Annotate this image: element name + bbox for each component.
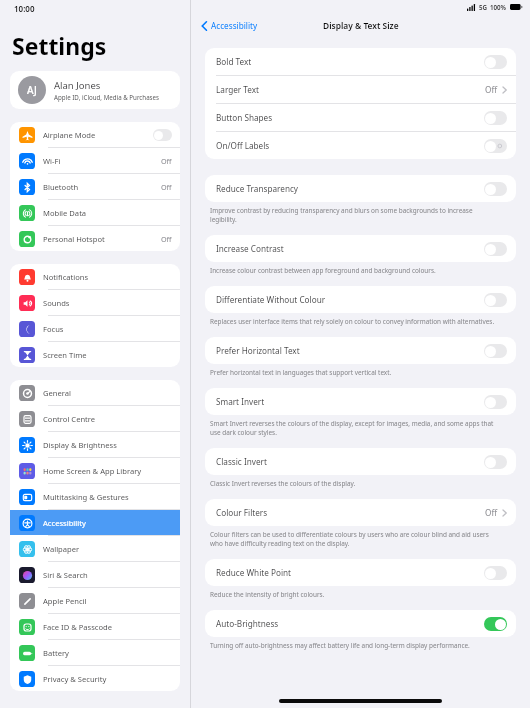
button[interactable]: Smart Invert (205, 388, 516, 415)
staticText: Multitasking & Gestures (43, 492, 129, 502)
button[interactable]: AJ (10, 71, 180, 109)
button[interactable]: Personal Hotspot (10, 226, 180, 251)
staticText: Siri & Search (43, 570, 88, 580)
staticText: Control Centre (43, 414, 96, 424)
staticText: Battery (43, 648, 69, 658)
staticText: Colour Filters (216, 507, 268, 518)
staticText: Increase colour contrast between app for… (210, 266, 436, 275)
staticText: Accessibility (211, 20, 258, 31)
button[interactable]: Accessibility (10, 510, 180, 535)
staticText: AJ (27, 83, 37, 97)
button[interactable]: On/Off Labels (205, 132, 516, 159)
staticText: Accessibility (43, 518, 86, 528)
button[interactable]: Classic Invert (205, 448, 516, 475)
staticText: Off (485, 507, 498, 518)
button[interactable]: Multitasking & Gestures (10, 484, 180, 509)
staticText: Replaces user interface items that rely … (210, 317, 495, 326)
staticText: Screen Time (43, 350, 87, 360)
staticText: Off (161, 182, 172, 192)
button[interactable]: Bold Text (205, 48, 516, 75)
staticText: Turning off auto-brightness may affect b… (210, 641, 470, 650)
button[interactable]: Siri & Search (10, 562, 180, 587)
staticText: Colour filters can be used to differenti… (210, 530, 489, 548)
button[interactable]: Increase Contrast (205, 235, 516, 262)
button[interactable]: Wi-Fi (10, 148, 180, 173)
button[interactable]: Off (153, 129, 172, 141)
button[interactable]: Off (484, 455, 507, 469)
button[interactable]: Prefer Horizontal Text (205, 337, 516, 364)
button[interactable]: Off (484, 55, 507, 69)
button[interactable]: Display & Brightness (10, 432, 180, 457)
button[interactable]: Button Shapes (205, 104, 516, 131)
staticText: Classic Invert (216, 456, 267, 467)
button[interactable]: Off (484, 293, 507, 307)
staticText: Face ID & Passcode (43, 622, 113, 632)
staticText: Increase Contrast (216, 243, 284, 254)
button[interactable]: Battery (10, 640, 180, 665)
button[interactable]: Privacy & Security (10, 666, 180, 691)
staticText: Mobile Data (43, 208, 87, 218)
staticText: Prefer Horizontal Text (216, 345, 300, 356)
button[interactable]: Differentiate Without Colour (205, 286, 516, 313)
staticText: Bluetooth (43, 182, 79, 192)
staticText: Notifications (43, 272, 89, 282)
button[interactable]: Off (484, 182, 507, 196)
staticText: Airplane Mode (43, 130, 96, 140)
staticText: Auto-Brightness (216, 618, 279, 629)
button[interactable]: Mobile Data (10, 200, 180, 225)
button[interactable]: Airplane Mode (10, 122, 180, 147)
button[interactable]: Off (484, 242, 507, 256)
button[interactable]: Screen Time (10, 342, 180, 367)
button[interactable]: Off (484, 344, 507, 358)
button[interactable]: Reduce White Point (205, 559, 516, 586)
staticText: On/Off Labels (216, 140, 270, 151)
button[interactable]: Off (484, 395, 507, 409)
button[interactable]: Home Screen & App Library (10, 458, 180, 483)
button[interactable]: Bluetooth (10, 174, 180, 199)
staticText: Personal Hotspot (43, 234, 105, 244)
button[interactable]: Off (484, 139, 507, 153)
button[interactable]: Focus (10, 316, 180, 341)
staticText: Reduce White Point (216, 567, 292, 578)
staticText: Apple ID, iCloud, Media & Purchases (54, 93, 160, 101)
staticText: 10:00 (14, 3, 35, 14)
staticText: Larger Text (216, 84, 260, 95)
button[interactable]: Off (484, 111, 507, 125)
button[interactable]: Notifications (10, 264, 180, 289)
staticText: Prefer horizontal text in languages that… (210, 368, 392, 377)
button[interactable]: Sounds (10, 290, 180, 315)
staticText: Wallpaper (43, 544, 80, 554)
button[interactable]: Larger Text (205, 76, 516, 103)
button[interactable]: Colour Filters (205, 499, 516, 526)
staticText: Off (161, 156, 172, 166)
staticText: Home Screen & App Library (43, 466, 142, 476)
button[interactable]: Reduce Transparency (205, 175, 516, 202)
button[interactable]: Wallpaper (10, 536, 180, 561)
staticText: Differentiate Without Colour (216, 294, 326, 305)
staticText: Apple Pencil (43, 596, 87, 606)
button[interactable]: General (10, 380, 180, 405)
staticText: Reduce the intensity of bright colours. (210, 590, 325, 599)
staticText: Classic Invert reverses the colours of t… (210, 479, 356, 488)
staticText: Smart Invert reverses the colours of the… (210, 419, 494, 437)
button[interactable]: Auto-Brightness (205, 610, 516, 637)
staticText: Reduce Transparency (216, 183, 299, 194)
button[interactable]: Control Centre (10, 406, 180, 431)
staticText: Focus (43, 324, 64, 334)
staticText: 5G (479, 3, 488, 11)
button[interactable]: On (484, 617, 507, 631)
staticText: 100% (490, 3, 507, 11)
button[interactable]: Apple Pencil (10, 588, 180, 613)
staticText: Off (161, 234, 172, 244)
staticText: Smart Invert (216, 396, 265, 407)
staticText: General (43, 388, 71, 398)
button[interactable]: Accessibility (199, 18, 260, 33)
button[interactable]: Off (484, 566, 507, 580)
staticText: Bold Text (216, 56, 252, 67)
staticText: Button Shapes (216, 112, 273, 123)
staticText: Alan Jones (54, 79, 101, 92)
button[interactable]: Face ID & Passcode (10, 614, 180, 639)
staticText: Display & Brightness (43, 440, 117, 450)
staticText: Settings (12, 30, 107, 61)
staticText: Privacy & Security (43, 674, 107, 684)
